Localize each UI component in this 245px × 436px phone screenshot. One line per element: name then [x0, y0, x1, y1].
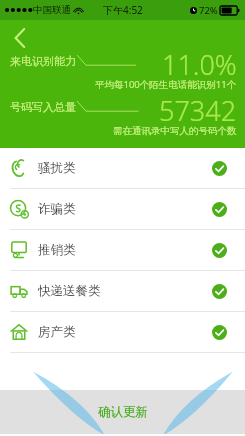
- staticText: 房产类: [38, 324, 76, 340]
- button[interactable]: 推销类: [0, 230, 245, 270]
- button[interactable]: 房产类 已启用: [206, 319, 232, 345]
- staticText: 中国联通: [33, 4, 71, 16]
- button[interactable]: 推销类 已启用: [206, 237, 232, 263]
- staticText: 平均每100个陌生电话能识别11个: [95, 78, 237, 91]
- button[interactable]: 快递送餐类: [0, 271, 245, 311]
- staticText: 号码写入总量: [10, 100, 76, 114]
- staticText: 11.0%: [162, 46, 237, 76]
- staticText: 需在通讯录中写人的号码个数: [113, 125, 237, 137]
- button[interactable]: 骚扰类 已启用: [206, 155, 232, 181]
- staticText: 骚扰类: [38, 160, 76, 176]
- staticText: 下午4:52: [103, 3, 143, 17]
- staticText: 确认更新: [98, 404, 148, 420]
- staticText: 快递送餐类: [38, 283, 101, 299]
- staticText: 诈骗类: [38, 201, 76, 217]
- staticText: 57342: [159, 92, 237, 122]
- button[interactable]: 房产类: [0, 312, 245, 352]
- staticText: 推销类: [38, 242, 76, 258]
- button[interactable]: 骚扰类: [0, 148, 245, 188]
- staticText: 72%: [199, 4, 218, 17]
- staticText: 来电识别能力: [10, 54, 76, 68]
- button[interactable]: 诈骗类: [0, 189, 245, 229]
- button[interactable]: 诈骗类 已启用: [206, 196, 232, 222]
- button[interactable]: 快递送餐类 已启用: [206, 278, 232, 304]
- button[interactable]: 确认更新: [0, 390, 245, 434]
- button[interactable]: 返回: [3, 21, 37, 55]
